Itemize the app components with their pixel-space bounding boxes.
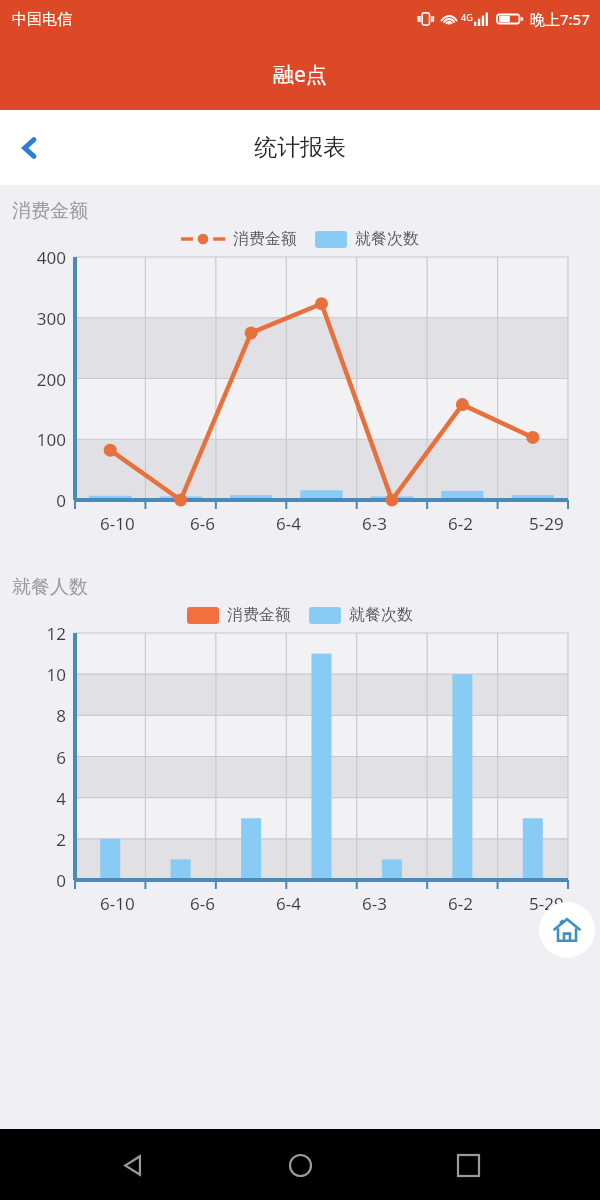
staticText: 4G (461, 11, 473, 23)
staticText: 0 (0, 869, 66, 892)
staticText: 4 (0, 787, 66, 810)
staticText: 6-10 (100, 892, 135, 915)
staticText: 8 (0, 704, 66, 727)
button[interactable]: Back (98, 1130, 168, 1200)
staticText: 就餐次数 (355, 229, 419, 249)
staticText: 6-2 (448, 892, 473, 915)
staticText: 晚上7:57 (530, 9, 590, 29)
staticText: 10 (0, 663, 66, 686)
staticText: 6-2 (448, 512, 473, 535)
staticText: 消费金额 (12, 199, 88, 223)
staticText: 6-4 (276, 892, 301, 915)
button[interactable]: Recents (433, 1130, 503, 1200)
staticText: 6-4 (276, 512, 301, 535)
staticText: 5-29 (529, 892, 564, 915)
staticText: 200 (0, 368, 66, 391)
staticText: 0 (0, 489, 66, 512)
staticText: 2 (0, 828, 66, 851)
staticText: 6-3 (362, 892, 387, 915)
staticText: 300 (0, 307, 66, 330)
staticText: 统计报表 (254, 133, 346, 162)
staticText: 6-6 (190, 892, 215, 915)
staticText: 5-29 (529, 512, 564, 535)
staticText: 消费金额 (233, 229, 297, 249)
button[interactable]: Home (265, 1130, 335, 1200)
staticText: 6-3 (362, 512, 387, 535)
staticText: 中国电信 (12, 10, 72, 29)
button[interactable]: Home (539, 902, 595, 958)
staticText: 消费金额 (227, 605, 291, 625)
staticText: 就餐人数 (12, 575, 88, 599)
staticText: 融e点 (273, 60, 327, 89)
staticText: 6-6 (190, 512, 215, 535)
staticText: 12 (0, 622, 66, 645)
staticText: 100 (0, 428, 66, 451)
staticText: 6 (0, 746, 66, 769)
staticText: 400 (0, 246, 66, 269)
staticText: 就餐次数 (349, 605, 413, 625)
staticText: 6-10 (100, 512, 135, 535)
button[interactable]: Back (0, 118, 60, 178)
